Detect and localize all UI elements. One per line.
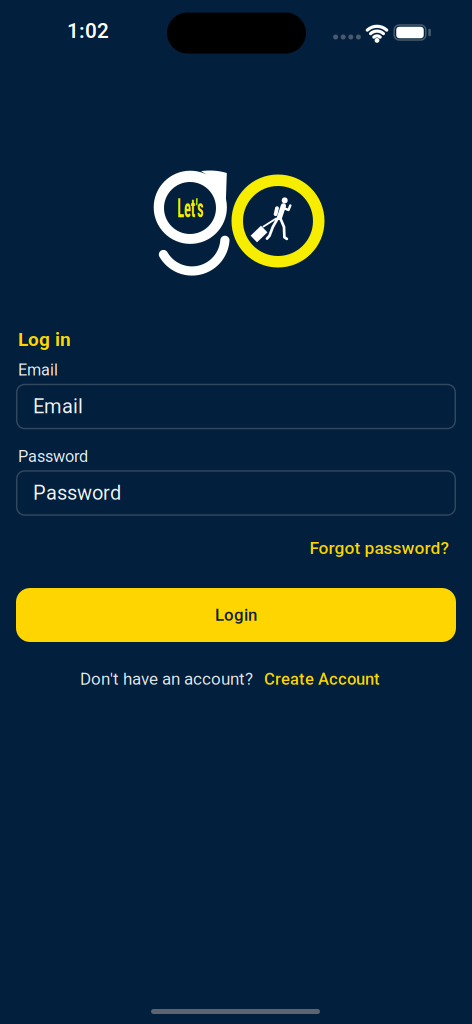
- staticText: 1:02: [67, 19, 109, 43]
- button[interactable]: Password: [16, 470, 456, 516]
- staticText: Email: [18, 360, 58, 380]
- staticText: Let's: [171, 196, 210, 221]
- staticText: Login: [215, 605, 257, 625]
- staticText: Email: [33, 395, 83, 418]
- staticText: Log in: [18, 328, 71, 351]
- staticText: Create Account: [264, 669, 380, 689]
- staticText: Password: [18, 447, 88, 466]
- button[interactable]: Login: [16, 588, 456, 642]
- button[interactable]: Email: [16, 384, 456, 429]
- staticText: Forgot password?: [309, 538, 448, 558]
- button[interactable]: Forgot password?: [309, 538, 448, 558]
- staticText: Password: [33, 481, 121, 505]
- staticText: Don't have an account?: [80, 669, 253, 689]
- button[interactable]: Create Account: [264, 669, 380, 689]
